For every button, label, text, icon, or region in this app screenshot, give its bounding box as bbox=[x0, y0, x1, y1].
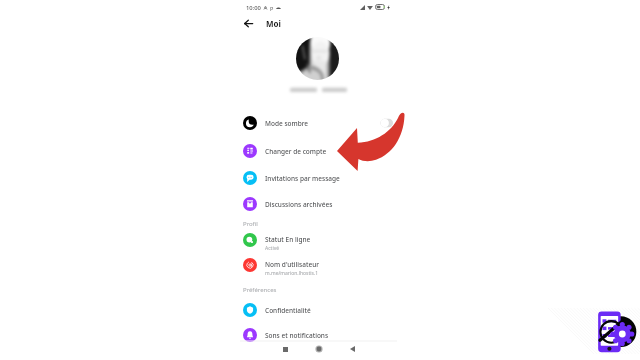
button[interactable]: Confidentialité bbox=[240, 298, 397, 322]
staticText: Invitations par message bbox=[265, 174, 340, 183]
staticText: Changer de compte bbox=[265, 147, 327, 156]
button[interactable]: Recent apps bbox=[279, 343, 291, 355]
staticText: Préférences bbox=[243, 286, 277, 294]
staticText: Confidentialité bbox=[265, 306, 311, 315]
staticText: Moi bbox=[266, 18, 281, 29]
button[interactable]: Nom d'utilisateur bbox=[240, 253, 397, 277]
button[interactable]: Statut En ligne bbox=[240, 228, 397, 252]
staticText: m.me/marion.lhostis.1 bbox=[265, 270, 319, 277]
staticText: Statut En ligne bbox=[265, 235, 311, 244]
button[interactable]: Back navigation bbox=[346, 343, 358, 355]
staticText: Nom d'utilisateur bbox=[265, 260, 319, 269]
button[interactable]: Sons et notifications bbox=[240, 323, 397, 347]
button[interactable]: Discussions archivées bbox=[240, 192, 397, 216]
button[interactable]: Mode sombre bbox=[240, 111, 397, 135]
staticText: Activé bbox=[265, 245, 280, 252]
staticText: 10:00 bbox=[246, 4, 261, 12]
button[interactable]: Invitations par message bbox=[240, 166, 397, 190]
button[interactable]: Changer de compte bbox=[240, 139, 397, 163]
button[interactable]: Home bbox=[313, 343, 325, 355]
staticText: Discussions archivées bbox=[265, 200, 333, 209]
button[interactable]: Back bbox=[238, 14, 258, 32]
staticText: Sons et notifications bbox=[265, 331, 329, 340]
staticText: Profil bbox=[243, 220, 258, 228]
button[interactable]: Dark mode toggle bbox=[379, 117, 394, 129]
staticText: Mode sombre bbox=[265, 119, 309, 128]
button[interactable]: Watermark logo bbox=[594, 308, 640, 354]
staticText: P bbox=[270, 5, 274, 12]
